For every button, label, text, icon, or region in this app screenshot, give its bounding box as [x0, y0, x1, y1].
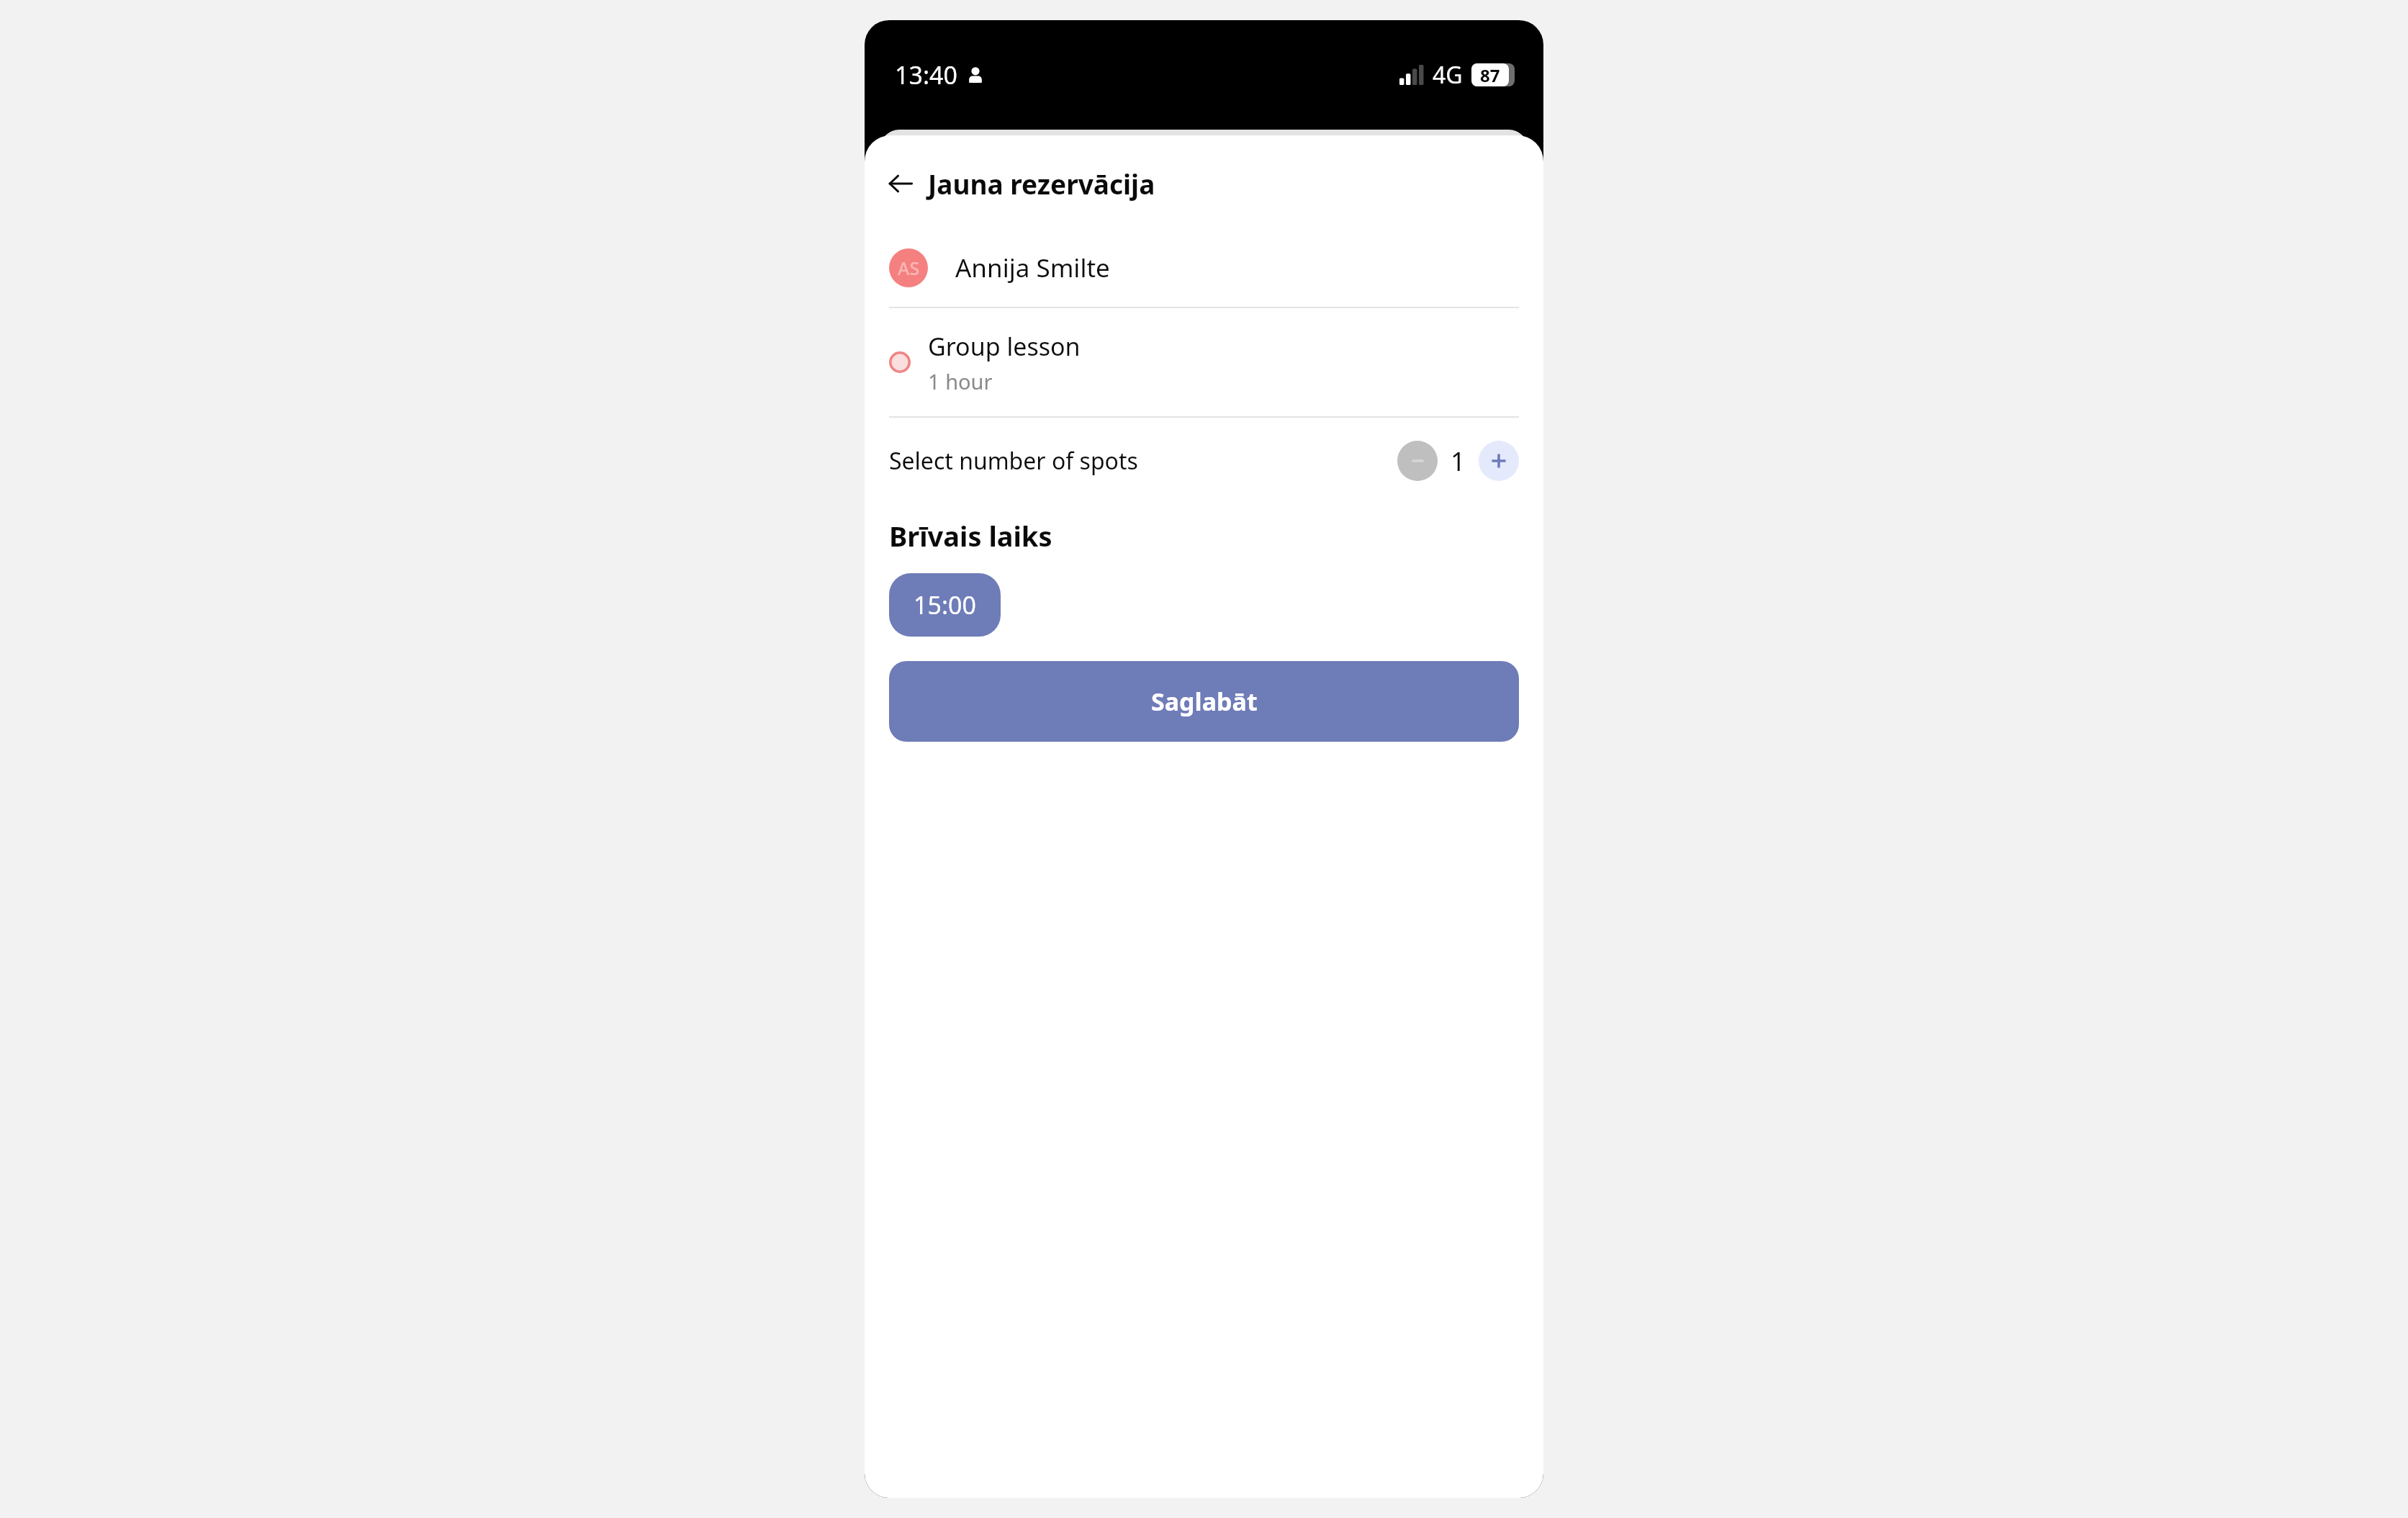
button[interactable]: Back — [879, 162, 922, 205]
button[interactable]: Group lesson — [865, 308, 1543, 416]
staticText: AS — [898, 256, 920, 280]
staticText: 15:00 — [914, 588, 976, 621]
staticText: Group lesson — [928, 330, 1081, 363]
staticText: Brīvais laiks — [889, 517, 1052, 554]
button[interactable]: AS — [865, 229, 1543, 307]
staticText: 13:40 — [895, 58, 957, 91]
staticText: 1 — [1451, 444, 1466, 479]
staticText: Jauna rezervācija — [928, 166, 1155, 202]
staticText: 1 hour — [928, 367, 993, 395]
button[interactable]: 15:00 — [889, 573, 1001, 637]
staticText: Saglabāt — [1151, 685, 1258, 718]
staticText: 4G — [1433, 59, 1463, 91]
button[interactable]: Decrease spots — [1397, 441, 1438, 481]
button[interactable]: Saglabāt — [889, 661, 1519, 742]
staticText: 87 — [1480, 63, 1500, 86]
button[interactable]: Increase spots — [1479, 441, 1519, 481]
staticText: Annija Smilte — [955, 251, 1110, 285]
staticText: Select number of spots — [889, 445, 1138, 477]
